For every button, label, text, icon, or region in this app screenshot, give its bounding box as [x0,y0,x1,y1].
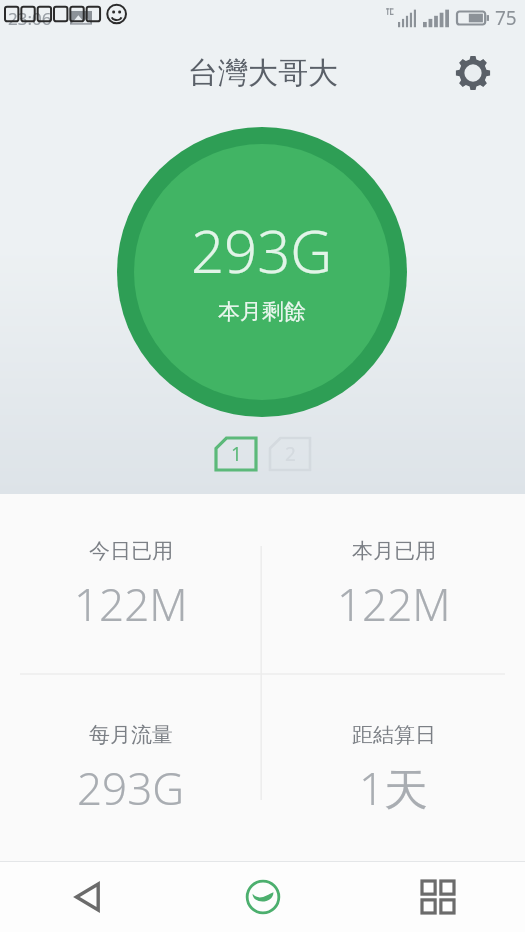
staticText: 293G [191,211,333,290]
staticText: 本月剩餘 [218,298,306,326]
staticText: 本月已用 [352,538,436,564]
button[interactable]: 2 [270,438,310,470]
staticText: 1天 [359,758,429,818]
button[interactable]: Recent apps [350,862,525,932]
button[interactable]: 每月流量 [0,678,262,862]
button[interactable]: Back [0,862,175,932]
staticText: 1 [231,441,242,467]
staticText: 293G [77,758,185,818]
staticText: 2 [285,441,296,467]
staticText: 今日已用 [89,538,173,564]
button[interactable]: Settings [451,51,495,95]
button[interactable]: 293G [117,127,407,417]
button[interactable]: 本月已用 [262,494,525,678]
staticText: 台灣大哥大 [188,54,338,92]
button[interactable]: Home [175,862,350,932]
button[interactable]: 1 [216,438,256,470]
staticText: 距結算日 [352,722,436,748]
button[interactable]: 距結算日 [262,678,525,862]
staticText: 75 [495,5,517,31]
button[interactable]: 今日已用 [0,494,262,678]
staticText: 每月流量 [89,722,173,748]
staticText: 23:06 [8,7,52,30]
staticText: 122M [337,574,451,634]
staticText: 122M [74,574,188,634]
